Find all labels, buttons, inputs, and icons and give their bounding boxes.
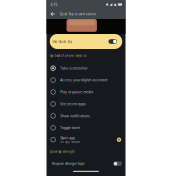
- staticText: Play or pause media: [60, 90, 93, 94]
- button[interactable]: Access your digital assistant: [46, 74, 125, 86]
- staticText: Use Quick Tap: [52, 39, 72, 43]
- staticText: Access your digital assistant: [60, 78, 107, 82]
- button[interactable]: Toggle torch: [46, 122, 125, 134]
- staticText: Open app: [60, 136, 75, 140]
- staticText: No app selected: [60, 140, 80, 144]
- staticText: Quick Tap to start actions: [60, 12, 96, 16]
- button[interactable]: Require stronger taps: [46, 158, 125, 170]
- button[interactable]: Open app: [46, 134, 125, 146]
- staticText: Require stronger taps: [52, 162, 84, 166]
- staticText: 4:16: [50, 2, 57, 7]
- button[interactable]: See recent apps: [46, 98, 125, 110]
- button[interactable]: Use Quick Tap: [50, 34, 122, 49]
- button[interactable]: Take screenshot: [46, 62, 125, 74]
- staticText: Toggle torch: [60, 126, 80, 130]
- staticText: Quick Tap strength: [50, 150, 75, 153]
- staticText: Tap back of phone twice to: [50, 54, 87, 57]
- staticText: See recent apps: [60, 102, 86, 106]
- staticText: Take screenshot: [60, 66, 87, 70]
- button[interactable]: Show notifications: [46, 110, 125, 122]
- staticText: Show notifications: [60, 114, 90, 118]
- button[interactable]: Back: [50, 9, 57, 19]
- button[interactable]: Play or pause media: [46, 86, 125, 98]
